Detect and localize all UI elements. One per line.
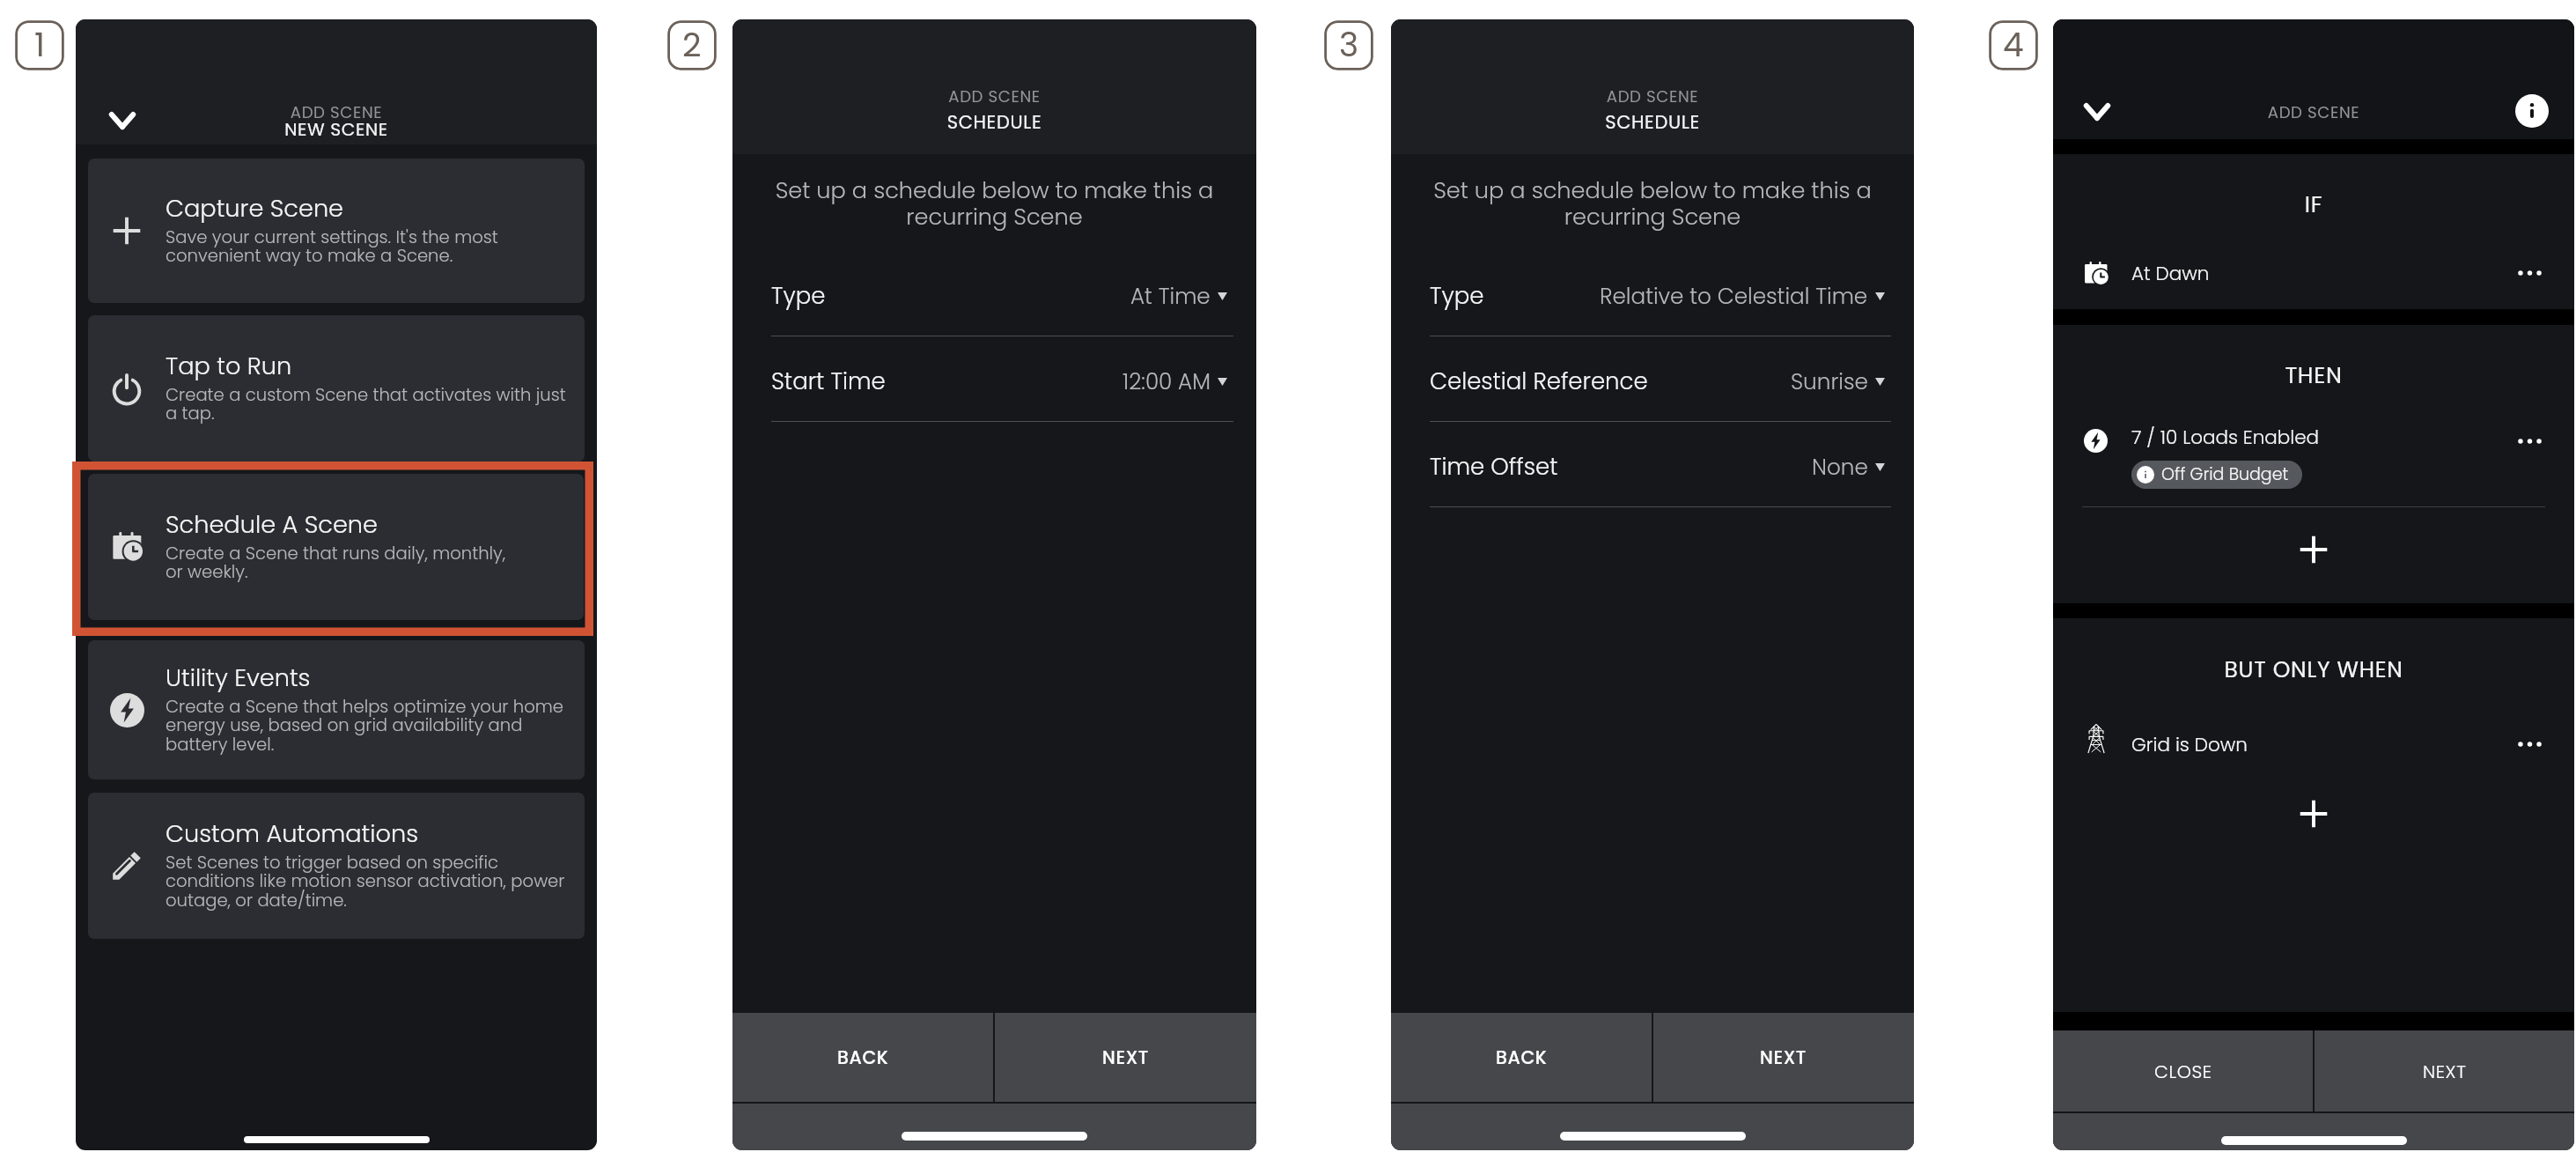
staticText: At Dawn (2131, 260, 2210, 286)
button[interactable]: Type (1430, 251, 1885, 336)
staticText: 2 (682, 22, 702, 69)
staticText: NEXT (2423, 1059, 2467, 1084)
staticText: Utility Events (166, 661, 311, 694)
button[interactable]: Collapse (101, 100, 144, 142)
button[interactable]: Time Offset (1430, 422, 1885, 506)
staticText: Create a Scene that helps optimize your … (166, 694, 564, 757)
button[interactable]: NEXT (2315, 1030, 2574, 1111)
button[interactable]: BACK (732, 1013, 993, 1102)
staticText: ADD SCENE (732, 85, 1256, 107)
staticText: ADD SCENE (76, 101, 597, 123)
staticText: Set up a schedule below to make this a r… (745, 174, 1244, 233)
staticText: None (1812, 452, 1868, 483)
staticText: Set up a schedule below to make this a r… (1403, 174, 1902, 233)
button[interactable]: Schedule A Scene (88, 474, 584, 620)
staticText: Relative to Celestial Time (1600, 281, 1868, 312)
button[interactable]: More options (2516, 735, 2543, 754)
staticText: NEW SCENE (76, 117, 597, 142)
button[interactable]: Capture Scene (88, 159, 585, 303)
staticText: Grid is Down (2131, 731, 2248, 757)
staticText: Start Time (771, 366, 886, 397)
button[interactable]: NEXT (1653, 1013, 1914, 1102)
staticText: Tap to Run (166, 349, 292, 382)
button[interactable]: More options (2516, 432, 2543, 451)
button[interactable]: Grid is Down (2084, 725, 2543, 764)
staticText: NEXT (1760, 1045, 1807, 1070)
button[interactable]: 7 / 10 Loads Enabled (2084, 424, 2543, 489)
staticText: SCHEDULE (732, 109, 1256, 135)
button[interactable]: Tap to Run (88, 315, 585, 462)
staticText: Set Scenes to trigger based on specific … (166, 850, 565, 912)
staticText: At Time (1130, 281, 1211, 312)
staticText: NEXT (1102, 1045, 1150, 1070)
button[interactable]: Custom Automations (88, 793, 585, 939)
staticText: 1 (34, 22, 45, 69)
staticText: BACK (1496, 1045, 1548, 1070)
staticText: 12:00 AM (1122, 366, 1211, 397)
staticText: CLOSE (2154, 1059, 2212, 1084)
staticText: Schedule A Scene (166, 507, 378, 541)
staticText: Off Grid Budget (2161, 462, 2289, 486)
staticText: Capture Scene (166, 191, 344, 225)
staticText: Celestial Reference (1430, 366, 1648, 397)
staticText: SCHEDULE (1391, 109, 1914, 135)
staticText: 7 / 10 Loads Enabled (2131, 424, 2320, 450)
button[interactable]: Start Time (771, 336, 1227, 421)
staticText: 3 (1339, 22, 1359, 69)
button[interactable]: Add condition (2053, 780, 2574, 847)
button[interactable]: BACK (1391, 1013, 1652, 1102)
staticText: Save your current settings. It's the mos… (166, 225, 498, 268)
button[interactable]: Celestial Reference (1430, 336, 1885, 421)
staticText: IF (2053, 188, 2574, 220)
staticText: 4 (2003, 22, 2024, 69)
button[interactable]: Type (771, 251, 1227, 336)
button[interactable]: NEXT (995, 1013, 1256, 1102)
staticText: BACK (837, 1045, 889, 1070)
button[interactable]: Add action (2053, 518, 2574, 581)
button[interactable]: Utility Events (88, 640, 585, 779)
staticText: Custom Automations (166, 816, 419, 850)
button[interactable]: At Dawn (2084, 254, 2543, 292)
staticText: ADD SCENE (2053, 101, 2574, 123)
button[interactable]: Info (2515, 94, 2549, 128)
button[interactable]: CLOSE (2053, 1030, 2313, 1111)
staticText: ADD SCENE (1391, 85, 1914, 107)
staticText: Sunrise (1791, 366, 1868, 397)
staticText: Type (1430, 280, 1484, 312)
button[interactable]: More options (2516, 263, 2543, 283)
staticText: Create a custom Scene that activates wit… (166, 382, 566, 425)
staticText: Create a Scene that runs daily, monthly,… (166, 541, 506, 584)
staticText: THEN (2053, 359, 2574, 391)
staticText: Time Offset (1430, 451, 1558, 483)
staticText: BUT ONLY WHEN (2053, 654, 2574, 685)
button[interactable]: Collapse (2076, 91, 2118, 133)
staticText: Type (771, 280, 826, 312)
